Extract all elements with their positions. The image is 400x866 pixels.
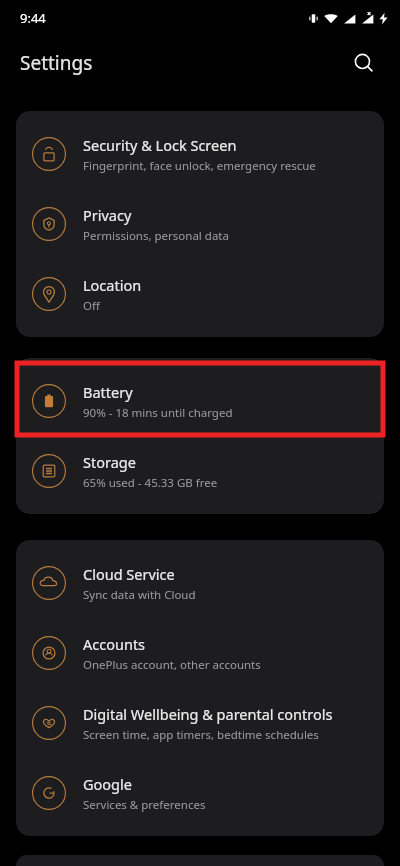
staticText: Settings: [20, 50, 93, 76]
button[interactable]: Battery: [16, 366, 384, 436]
button[interactable]: Digital Wellbeing & parental controls: [16, 688, 384, 758]
staticText: 65% used - 45.33 GB free: [83, 475, 218, 491]
staticText: Battery: [83, 382, 133, 402]
staticText: Services & preferences: [83, 797, 206, 813]
staticText: 90% - 18 mins until charged: [83, 405, 233, 421]
button[interactable]: Storage: [16, 436, 384, 506]
staticText: Fingerprint, face unlock, emergency resc…: [83, 158, 316, 174]
button[interactable]: Privacy: [16, 189, 384, 259]
staticText: Accounts: [83, 634, 146, 654]
staticText: Sync data with Cloud: [83, 587, 196, 603]
staticText: Location: [83, 275, 142, 295]
button[interactable]: Accounts: [16, 618, 384, 688]
button[interactable]: Cloud Service: [16, 548, 384, 618]
staticText: OnePlus account, other accounts: [83, 657, 261, 673]
staticText: Privacy: [83, 205, 132, 225]
staticText: Digital Wellbeing & parental controls: [83, 704, 333, 724]
staticText: Google: [83, 774, 132, 794]
staticText: Security & Lock Screen: [83, 135, 237, 155]
staticText: Permissions, personal data: [83, 228, 229, 244]
staticText: Storage: [83, 452, 136, 472]
button[interactable]: Security & Lock Screen: [16, 119, 384, 189]
staticText: 9:44: [20, 9, 46, 27]
button[interactable]: Location: [16, 259, 384, 329]
staticText: Screen time, app timers, bedtime schedul…: [83, 727, 319, 743]
staticText: Off: [83, 298, 100, 314]
staticText: Cloud Service: [83, 564, 175, 584]
button[interactable]: Search: [342, 41, 386, 85]
button[interactable]: Google: [16, 758, 384, 828]
